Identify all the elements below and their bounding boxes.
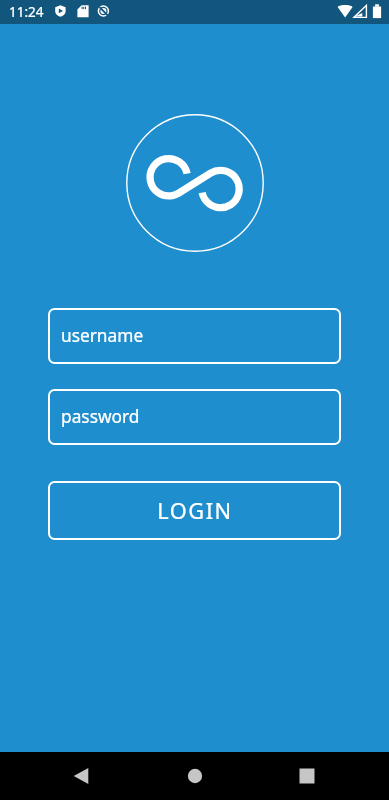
button[interactable]: LOGIN [48,481,341,540]
button[interactable]: password [48,389,341,445]
button[interactable]: Recent apps [274,752,340,800]
button[interactable]: username [48,308,341,364]
staticText: 11:24 [9,3,44,21]
staticText: password [61,405,140,429]
button[interactable]: Back [48,752,114,800]
button[interactable]: Home [162,752,228,800]
staticText: LOGIN [157,496,233,526]
staticText: username [61,324,144,348]
